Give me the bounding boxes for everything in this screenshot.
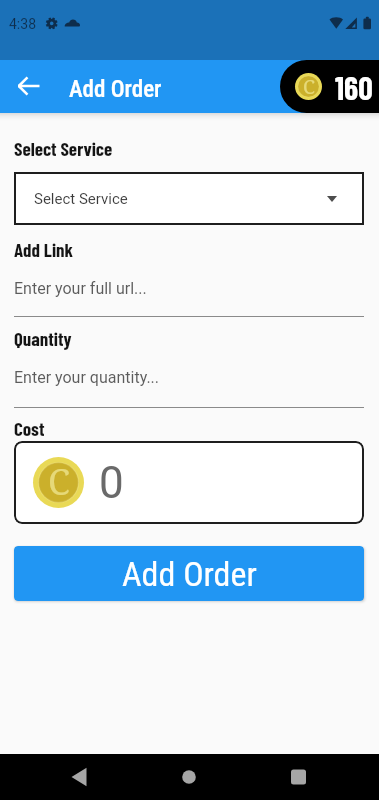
button[interactable]: Add Order bbox=[14, 546, 364, 601]
staticText: C bbox=[303, 73, 315, 99]
staticText: 4:38 bbox=[9, 16, 36, 32]
button[interactable]: Back bbox=[14, 70, 46, 102]
button[interactable]: Select Service bbox=[14, 172, 364, 225]
staticText: Add Order bbox=[69, 76, 162, 103]
staticText: Add Order bbox=[122, 554, 257, 594]
staticText: Cost bbox=[14, 417, 45, 440]
staticText: Enter your full url... bbox=[14, 279, 147, 298]
staticText: Enter your quantity... bbox=[14, 368, 160, 387]
staticText: 160 bbox=[335, 68, 373, 106]
staticText: Select Service bbox=[14, 137, 113, 160]
staticText: Select Service bbox=[34, 190, 128, 208]
staticText: Add Link bbox=[14, 238, 74, 261]
staticText: 0 bbox=[99, 457, 124, 509]
staticText: C bbox=[48, 457, 70, 506]
staticText: Quantity bbox=[14, 327, 72, 350]
button[interactable]: C bbox=[280, 60, 379, 113]
